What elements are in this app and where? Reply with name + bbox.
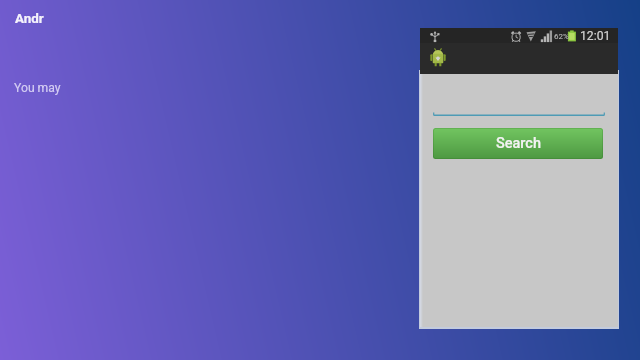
button[interactable]: Search field xyxy=(433,110,605,118)
staticText: 12:01 xyxy=(580,29,611,43)
button[interactable]: Search xyxy=(433,128,603,159)
staticText: You may xyxy=(14,81,61,95)
other: App icon xyxy=(430,48,446,67)
staticText: Search xyxy=(496,135,541,152)
staticText: Andr xyxy=(15,11,44,27)
staticText: 62% xyxy=(554,32,569,41)
